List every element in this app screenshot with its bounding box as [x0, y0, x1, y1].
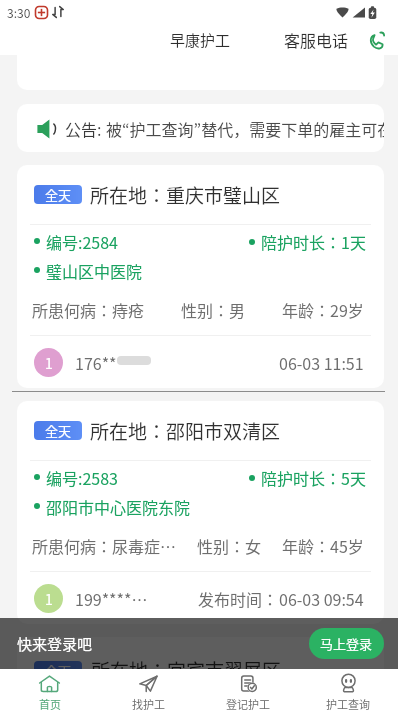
- staticText: 客服电话: [284, 28, 349, 51]
- staticText: 06-03 09:54: [279, 587, 364, 610]
- staticText: 邵阳市中心医院东院: [46, 495, 191, 518]
- staticText: 3:30: [7, 4, 31, 21]
- staticText: 1: [45, 353, 53, 373]
- button[interactable]: 全天: [17, 401, 384, 624]
- staticText: 马上登录: [320, 634, 373, 653]
- staticText: 06-03 11:51: [279, 351, 364, 374]
- staticText: 所在地：宜宾市翠屏区: [91, 656, 282, 684]
- button[interactable]: 首页: [0, 669, 99, 712]
- staticText: 早康护工: [170, 29, 231, 51]
- button[interactable]: 登记护工: [198, 669, 298, 712]
- staticText: 登记护工: [226, 696, 270, 712]
- staticText: 璧山区中医院: [46, 259, 143, 282]
- staticText: 1: [45, 589, 53, 609]
- staticText: 199****…: [75, 587, 148, 610]
- staticText: 全天: [45, 185, 72, 204]
- button[interactable]: 全天: [17, 165, 384, 388]
- staticText: 护工查询: [326, 696, 370, 712]
- staticText: 性别：男: [181, 298, 246, 321]
- staticText: 编号:2584: [46, 230, 118, 253]
- button[interactable]: 马上登录: [309, 628, 384, 659]
- staticText: 找护工: [132, 696, 165, 712]
- staticText: 所患何病：痔疮: [32, 298, 145, 321]
- staticText: 快来登录吧: [17, 633, 93, 655]
- staticText: 陪护时长：5天: [261, 466, 366, 489]
- button[interactable]: 客服电话: [284, 28, 349, 51]
- staticText: 年龄：29岁: [282, 298, 364, 321]
- staticText: 全天: [45, 421, 72, 440]
- staticText: 所在地：邵阳市双清区: [90, 417, 281, 445]
- staticText: 176**: [75, 351, 117, 374]
- button[interactable]: 护工查询: [298, 669, 398, 712]
- button[interactable]: 找护工: [99, 669, 198, 712]
- staticText: 陪护时长：1天: [261, 230, 366, 253]
- staticText: 年龄：45岁: [282, 534, 364, 557]
- button[interactable]: 客服电话: [366, 30, 386, 50]
- staticText: 发布时间：: [198, 587, 279, 610]
- staticText: 首页: [39, 696, 61, 712]
- staticText: 所在地：重庆市璧山区: [90, 181, 281, 209]
- button[interactable]: 早康护工: [170, 29, 231, 51]
- staticText: 所患何病：尿毒症…: [32, 534, 177, 557]
- staticText: 性别：女: [197, 534, 262, 557]
- staticText: 公告:: [65, 117, 102, 140]
- staticText: 编号:2583: [46, 466, 118, 489]
- staticText: 被“护工查询”替代，需要下单的雇主可在: [106, 117, 384, 140]
- staticText: 全天: [45, 661, 72, 680]
- button[interactable]: 公告:: [17, 104, 384, 152]
